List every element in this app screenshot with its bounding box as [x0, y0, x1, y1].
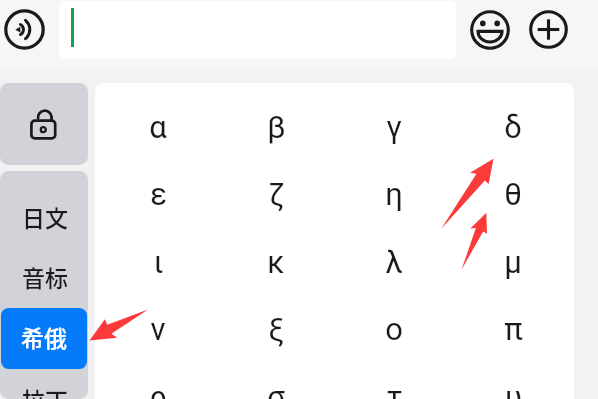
staticText: κ: [267, 244, 285, 280]
staticText: σ: [267, 379, 285, 399]
button[interactable]: 日文: [2, 185, 87, 247]
staticText: 希俄: [21, 320, 67, 353]
staticText: ξ: [268, 311, 284, 347]
button[interactable]: ι: [108, 231, 208, 293]
button[interactable]: τ: [344, 366, 444, 399]
button[interactable]: ο: [344, 298, 444, 360]
staticText: λ: [385, 244, 403, 280]
staticText: π: [504, 311, 523, 347]
staticText: υ: [505, 379, 522, 399]
staticText: 拉丁: [22, 382, 68, 399]
button[interactable]: ξ: [226, 298, 326, 360]
staticText: η: [385, 176, 403, 212]
staticText: β: [267, 109, 286, 145]
staticText: 音标: [22, 260, 68, 293]
button[interactable]: [59, 1, 456, 59]
button[interactable]: β: [226, 96, 326, 158]
button[interactable]: 希俄: [1, 308, 87, 369]
button[interactable]: ζ: [226, 163, 326, 225]
button[interactable]: 音标: [2, 245, 87, 307]
button[interactable]: π: [463, 298, 563, 360]
button[interactable]: λ: [344, 231, 444, 293]
staticText: τ: [386, 379, 403, 399]
staticText: θ: [504, 176, 522, 212]
staticText: 日文: [22, 200, 68, 233]
button[interactable]: σ: [226, 366, 326, 399]
button[interactable]: ε: [108, 163, 208, 225]
button[interactable]: α: [108, 96, 208, 158]
staticText: ι: [153, 244, 164, 280]
button[interactable]: θ: [463, 163, 563, 225]
button[interactable]: μ: [463, 231, 563, 293]
button[interactable]: δ: [463, 96, 563, 158]
staticText: ζ: [268, 176, 285, 212]
staticText: δ: [504, 109, 522, 145]
staticText: ρ: [149, 379, 167, 399]
staticText: γ: [386, 109, 402, 145]
staticText: ν: [150, 311, 166, 347]
button[interactable]: 拉丁: [2, 367, 87, 399]
staticText: ο: [385, 311, 403, 347]
button[interactable]: υ: [463, 366, 563, 399]
staticText: μ: [504, 244, 522, 280]
button[interactable]: Sound: [4, 9, 45, 50]
button[interactable]: Unlock: [0, 83, 88, 165]
button[interactable]: Emoji: [470, 10, 510, 50]
button[interactable]: ρ: [108, 366, 208, 399]
button[interactable]: η: [344, 163, 444, 225]
staticText: α: [149, 109, 167, 145]
button[interactable]: κ: [226, 231, 326, 293]
button[interactable]: ν: [108, 298, 208, 360]
button[interactable]: γ: [344, 96, 444, 158]
button[interactable]: Add: [529, 10, 568, 49]
staticText: ε: [150, 176, 167, 212]
